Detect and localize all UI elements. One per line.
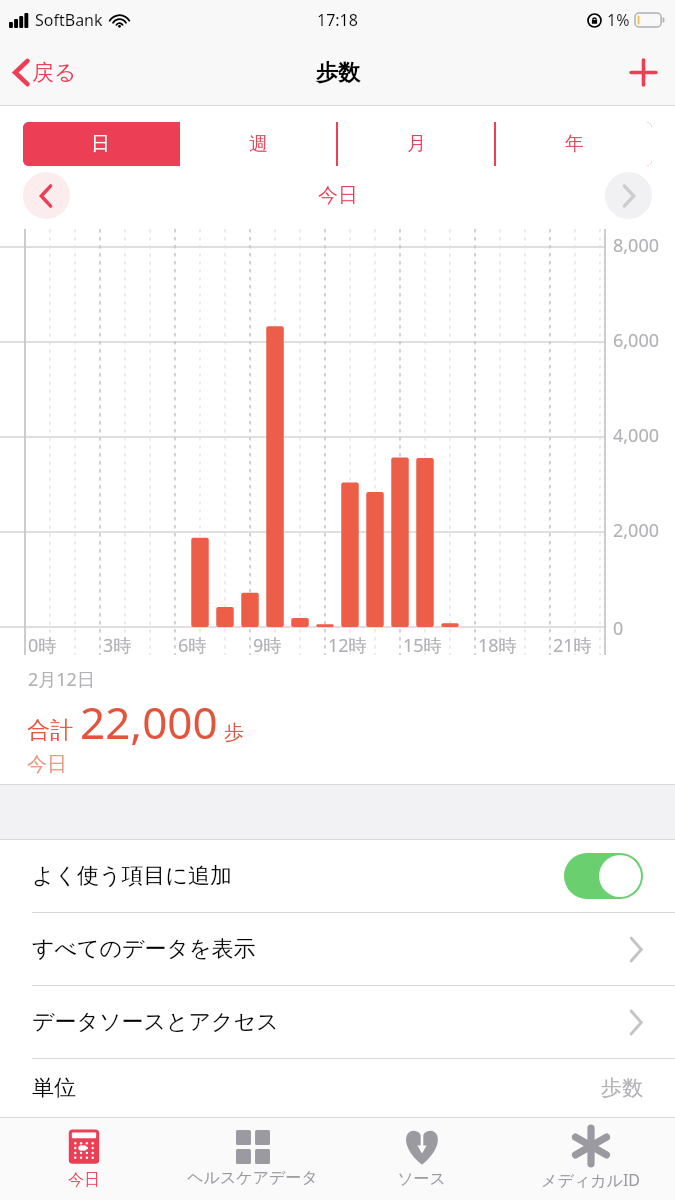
staticText: よく使う項目に追加 bbox=[32, 862, 233, 890]
staticText: 日 bbox=[91, 132, 110, 156]
staticText: 12時 bbox=[328, 633, 367, 658]
button[interactable]: ソース bbox=[337, 1118, 506, 1200]
staticText: 22,000 bbox=[80, 692, 218, 752]
staticText: 1% bbox=[607, 9, 630, 31]
staticText: 15時 bbox=[403, 633, 442, 658]
staticText: 6,000 bbox=[613, 328, 660, 353]
staticText: 週 bbox=[249, 132, 268, 156]
staticText: 今日 bbox=[318, 183, 358, 208]
staticText: 21時 bbox=[553, 633, 592, 658]
button[interactable]: 戻る bbox=[0, 48, 91, 97]
staticText: SoftBank bbox=[35, 9, 103, 31]
button[interactable]: Add data bbox=[612, 47, 675, 98]
staticText: 単位 bbox=[32, 1074, 76, 1102]
staticText: 3時 bbox=[103, 633, 132, 658]
staticText: 2月12日 bbox=[28, 667, 95, 692]
button[interactable]: Next day bbox=[605, 172, 652, 219]
staticText: 2,000 bbox=[613, 518, 660, 543]
staticText: 戻る bbox=[32, 59, 77, 87]
staticText: 年 bbox=[565, 132, 584, 156]
staticText: 4,000 bbox=[613, 423, 660, 448]
staticText: メディカルID bbox=[541, 1169, 640, 1191]
staticText: 0 bbox=[613, 616, 624, 641]
staticText: 8,000 bbox=[613, 233, 660, 258]
staticText: 歩 bbox=[224, 720, 244, 745]
staticText: 月 bbox=[407, 132, 426, 156]
staticText: 9時 bbox=[253, 633, 282, 658]
button[interactable]: 単位 bbox=[0, 1059, 675, 1117]
button[interactable]: 週 bbox=[180, 122, 336, 166]
staticText: 歩数 bbox=[316, 59, 360, 87]
button[interactable]: Previous day bbox=[23, 172, 70, 219]
button[interactable]: メディカルID bbox=[506, 1118, 675, 1200]
staticText: 17:18 bbox=[317, 9, 358, 31]
button[interactable]: よく使う項目に追加 bbox=[0, 840, 675, 912]
button[interactable]: 日 bbox=[23, 122, 178, 166]
button[interactable]: 今日 bbox=[0, 1118, 168, 1200]
staticText: すべてのデータを表示 bbox=[32, 935, 256, 963]
staticText: ソース bbox=[397, 1169, 446, 1189]
staticText: 6時 bbox=[178, 633, 207, 658]
button[interactable]: すべてのデータを表示 bbox=[0, 913, 675, 985]
staticText: 今日 bbox=[68, 1170, 100, 1190]
button[interactable]: 年 bbox=[496, 122, 652, 166]
staticText: 今日 bbox=[27, 752, 67, 777]
button[interactable] bbox=[564, 853, 643, 899]
staticText: ヘルスケアデータ bbox=[187, 1168, 318, 1188]
staticText: データソースとアクセス bbox=[32, 1008, 279, 1036]
staticText: 18時 bbox=[478, 633, 517, 658]
button[interactable]: 月 bbox=[338, 122, 494, 166]
staticText: 歩数 bbox=[601, 1075, 643, 1101]
staticText: 0時 bbox=[28, 633, 57, 658]
button[interactable]: ヘルスケアデータ bbox=[168, 1118, 337, 1200]
staticText: 合計 bbox=[27, 716, 73, 745]
button[interactable]: データソースとアクセス bbox=[0, 986, 675, 1058]
